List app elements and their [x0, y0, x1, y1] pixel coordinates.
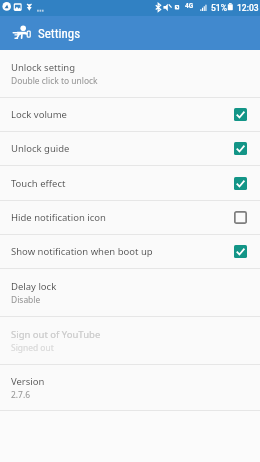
- button[interactable]: Version: [0, 365, 260, 410]
- staticText: Double click to unlock: [11, 75, 98, 87]
- button[interactable]: Checked: [234, 245, 247, 258]
- staticText: Show notification when boot up: [11, 245, 153, 258]
- button[interactable]: Checked: [234, 142, 247, 155]
- staticText: Signed out: [11, 342, 54, 354]
- button[interactable]: Hide notification icon: [0, 201, 260, 234]
- button[interactable]: Unchecked: [234, 211, 247, 224]
- button[interactable]: Unlock guide: [0, 132, 260, 165]
- staticText: Disable: [11, 294, 41, 306]
- button[interactable]: Sign out of YouTube: [0, 317, 260, 364]
- staticText: Hide notification icon: [11, 211, 106, 224]
- button[interactable]: Lock volume: [0, 98, 260, 131]
- staticText: 2.7.6: [11, 389, 31, 401]
- staticText: Delay lock: [11, 280, 57, 293]
- button[interactable]: Unlock setting: [0, 50, 260, 97]
- button[interactable]: Checked: [234, 108, 247, 121]
- staticText: 12:03: [237, 3, 259, 13]
- staticText: Unlock guide: [11, 142, 70, 155]
- other: App icon: [0, 16, 260, 50]
- button[interactable]: Show notification when boot up: [0, 235, 260, 268]
- button[interactable]: Touch effect: [0, 166, 260, 200]
- staticText: 4G: [185, 2, 194, 10]
- staticText: Unlock setting: [11, 61, 76, 74]
- staticText: Sign out of YouTube: [11, 328, 101, 341]
- staticText: 51%: [211, 3, 227, 13]
- button[interactable]: Checked: [234, 177, 247, 190]
- staticText: Lock volume: [11, 108, 67, 121]
- button[interactable]: Delay lock: [0, 269, 260, 316]
- staticText: Settings: [38, 26, 81, 41]
- staticText: Version: [11, 375, 45, 388]
- staticText: Touch effect: [11, 177, 66, 190]
